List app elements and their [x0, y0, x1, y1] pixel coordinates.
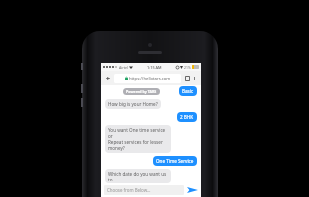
staticText: 2 BHK — [180, 114, 194, 120]
staticText: Basic — [182, 88, 194, 94]
staticText: How big is your Home? — [108, 101, 158, 107]
button[interactable]: Back — [104, 74, 112, 82]
staticText: You want One time service or Repeat serv… — [108, 127, 168, 151]
staticText: One Time Service — [156, 158, 194, 164]
staticText: Choose from Below... — [107, 187, 151, 193]
staticText: https://hellotars.com — [129, 76, 171, 82]
button[interactable]: More options — [191, 75, 198, 82]
button[interactable]: Which date do you want us to send the he… — [105, 169, 171, 183]
button[interactable]: Send — [186, 184, 198, 196]
staticText: Powered by TARS — [126, 89, 157, 94]
button[interactable]: 2 BHK — [177, 112, 197, 122]
button[interactable]: You want One time service or Repeat serv… — [105, 125, 171, 153]
button[interactable]: Tabs — [183, 74, 191, 82]
button[interactable]: https://hellotars.com — [114, 74, 181, 83]
staticText: Airtel — [119, 65, 128, 70]
staticText: 21% — [184, 65, 191, 70]
button[interactable]: How big is your Home? — [105, 99, 161, 109]
button[interactable]: One Time Service — [153, 156, 197, 166]
button[interactable]: Basic — [179, 86, 197, 96]
button[interactable]: Choose from Below... — [104, 185, 184, 195]
staticText: Which date do you want us to send the he… — [108, 171, 168, 181]
staticText: 1:15 AM — [147, 65, 162, 70]
